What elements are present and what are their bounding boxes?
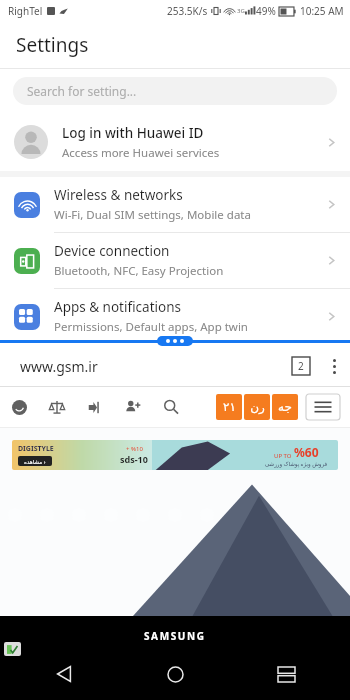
button[interactable]: Advertisement [12, 440, 338, 470]
button[interactable]: ۲۱ [216, 394, 242, 420]
staticText: جه [278, 400, 292, 414]
button[interactable]: جه [272, 394, 298, 420]
staticText: Device connection [54, 242, 170, 260]
staticText: 10:25 AM [300, 4, 344, 18]
button[interactable]: Sheet handle [157, 336, 193, 346]
staticText: Bluetooth, NFC, Easy Projection [54, 263, 224, 279]
button[interactable]: Recents [268, 656, 304, 692]
staticText: مشاهده › [24, 458, 46, 465]
staticText: Permissions, Default apps, App twin [54, 319, 248, 335]
staticText: فروش ویژه پوشاک ورزشی [265, 460, 328, 467]
staticText: Search for setting... [27, 83, 137, 99]
button[interactable]: Log in with Huawei ID [0, 113, 350, 171]
staticText: DIGISTYLE [18, 444, 54, 454]
button[interactable]: Compare [44, 394, 70, 420]
button[interactable]: Tabs [292, 357, 310, 375]
staticText: 49% [256, 4, 276, 18]
staticText: sds-10 [120, 453, 148, 465]
staticText: %60 [294, 444, 319, 460]
button[interactable]: More options [324, 354, 344, 378]
staticText: رن [250, 400, 265, 414]
staticText: Apps & notifications [54, 298, 181, 316]
staticText: 253.5K/s [167, 4, 208, 18]
button[interactable]: Back [46, 656, 82, 692]
staticText: Access more Huawei services [62, 145, 220, 161]
button[interactable]: Add user [120, 394, 146, 420]
button[interactable]: Menu [306, 394, 340, 420]
staticText: 2 [298, 359, 304, 373]
staticText: Settings [16, 32, 89, 58]
button[interactable]: Globe [6, 394, 32, 420]
staticText: RighTel [8, 4, 43, 18]
staticText: Wireless & networks [54, 186, 183, 204]
button[interactable]: Sign in [82, 394, 108, 420]
button[interactable]: Device connection [0, 233, 350, 288]
button[interactable]: www.gsm.ir [8, 350, 282, 382]
button[interactable]: Wireless & networks [0, 177, 350, 232]
staticText: + %10 [126, 445, 143, 453]
staticText: UP TO [274, 452, 294, 460]
button[interactable]: Search [158, 394, 184, 420]
button[interactable]: Search for setting... [13, 77, 337, 105]
button[interactable]: Home [157, 656, 193, 692]
staticText: 3G [237, 7, 245, 15]
staticText: ۲۱ [223, 400, 236, 414]
staticText: www.gsm.ir [20, 357, 98, 376]
button[interactable]: رن [244, 394, 270, 420]
staticText: SAMSUNG [144, 629, 206, 643]
staticText: Wi-Fi, Dual SIM settings, Mobile data [54, 207, 251, 223]
staticText: Log in with Huawei ID [62, 124, 204, 142]
button[interactable]: Apps & notifications [0, 289, 350, 344]
